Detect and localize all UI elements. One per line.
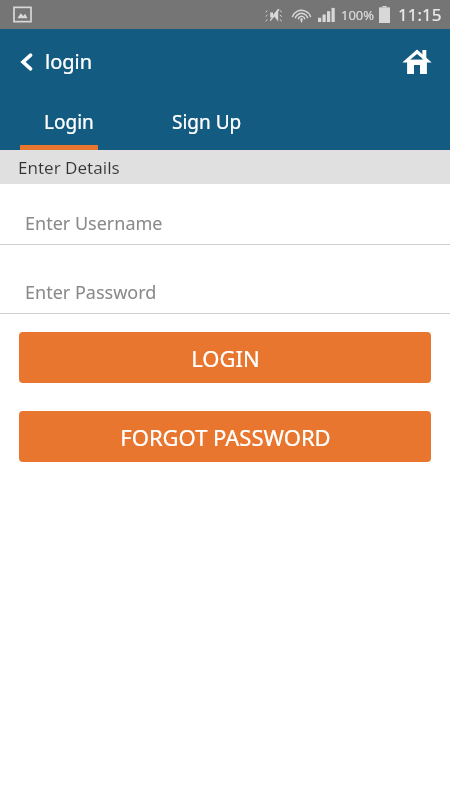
staticText: LOGIN [191,343,260,373]
button[interactable]: Enter Password [0,271,450,314]
button[interactable]: Sign Up [138,94,276,150]
button[interactable]: LOGIN [19,332,431,383]
button[interactable]: Home [394,39,440,85]
button[interactable]: login [0,42,105,81]
staticText: FORGOT PASSWORD [120,422,331,452]
button[interactable]: Login [0,94,138,150]
staticText: Sign Up [172,109,242,135]
staticText: login [45,48,93,75]
button[interactable]: FORGOT PASSWORD [19,411,431,462]
button[interactable]: Enter Username [0,202,450,245]
staticText: 100% [341,6,375,24]
staticText: Enter Username [25,211,163,236]
staticText: Enter Password [25,280,157,305]
staticText: Login [44,109,94,135]
staticText: 11:15 [398,3,442,26]
staticText: Enter Details [18,156,120,179]
